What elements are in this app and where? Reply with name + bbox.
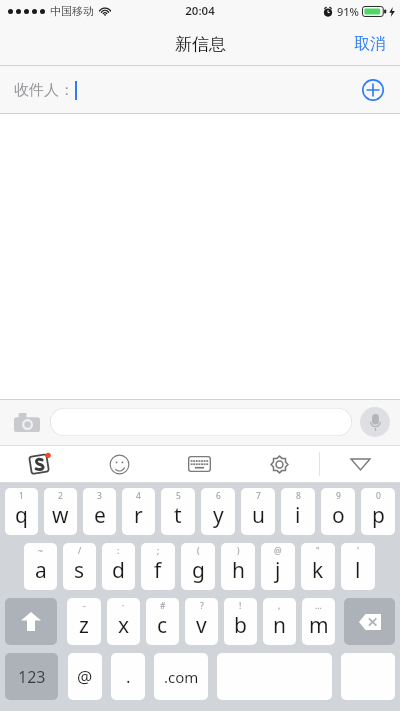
button[interactable]: ; [141, 543, 175, 590]
staticText: · [122, 600, 125, 612]
button[interactable]: @ [68, 653, 102, 700]
staticText: 6 [216, 490, 221, 502]
staticText: l [355, 556, 361, 585]
staticText: 5 [176, 490, 181, 502]
staticText: g [192, 556, 205, 585]
button[interactable]: : [102, 543, 135, 590]
button[interactable]: 9 [321, 488, 355, 535]
staticText: w [52, 501, 69, 530]
button[interactable]: 3 [83, 488, 116, 535]
staticText: 收件人： [14, 81, 74, 100]
staticText: 8 [296, 490, 301, 502]
staticText: q [15, 501, 28, 530]
staticText: 取消 [354, 34, 386, 54]
staticText: 123 [18, 666, 46, 688]
staticText: , [278, 600, 281, 612]
staticText: .com [164, 667, 199, 687]
button[interactable]: ) [221, 543, 255, 590]
button[interactable] [50, 408, 352, 436]
staticText: ! [239, 600, 242, 612]
staticText: i [295, 501, 301, 530]
button[interactable]: " [301, 543, 335, 590]
button[interactable]: Hide keyboard [320, 445, 400, 483]
button[interactable]: Settings [239, 445, 319, 483]
staticText: o [332, 501, 345, 530]
staticText: 2 [58, 490, 63, 502]
button[interactable]: Keyboard layout [159, 445, 239, 483]
button[interactable]: Numbers [5, 653, 58, 700]
staticText: 1 [19, 490, 24, 502]
staticText: " [316, 545, 320, 557]
button[interactable]: 0 [361, 488, 395, 535]
staticText: @ [77, 665, 93, 688]
button[interactable]: ( [181, 543, 215, 590]
button[interactable]: 5 [161, 488, 195, 535]
staticText: b [234, 611, 247, 640]
button[interactable]: 7 [241, 488, 275, 535]
button[interactable]: 2 [44, 488, 77, 535]
staticText: n [273, 611, 286, 640]
button[interactable]: ? [185, 598, 218, 645]
staticText: 4 [136, 490, 141, 502]
button[interactable]: 8 [281, 488, 315, 535]
staticText: / [78, 545, 82, 557]
staticText: @ [274, 545, 282, 557]
staticText: 0 [376, 490, 381, 502]
staticText: 新信息 [175, 34, 226, 55]
staticText: ) [237, 545, 240, 557]
staticText: t [174, 501, 182, 530]
button[interactable]: , [263, 598, 296, 645]
staticText: 91% [337, 4, 359, 19]
staticText: 中国移动 [50, 4, 94, 18]
button[interactable]: 取消 [340, 24, 400, 64]
button[interactable]: # [146, 598, 179, 645]
staticText: a [35, 556, 47, 585]
staticText: e [94, 501, 106, 530]
button[interactable]: 6 [201, 488, 235, 535]
button[interactable]: Emoji [79, 445, 159, 483]
button[interactable]: · [107, 598, 140, 645]
staticText: ? [200, 600, 204, 612]
staticText: v [196, 611, 207, 640]
staticText: ~ [38, 545, 43, 557]
button[interactable]: Add recipient [356, 73, 390, 107]
button[interactable]: Backspace [344, 598, 395, 645]
button[interactable]: .com [154, 653, 208, 700]
staticText: m [309, 611, 329, 640]
staticText: u [252, 501, 265, 530]
staticText: c [157, 611, 168, 640]
button[interactable]: / [63, 543, 96, 590]
staticText: 3 [97, 490, 102, 502]
staticText: f [154, 556, 162, 585]
staticText: ( [197, 545, 200, 557]
button[interactable]: ~ [24, 543, 57, 590]
staticText: z [79, 611, 89, 640]
staticText: h [232, 556, 245, 585]
button[interactable]: 1 [5, 488, 38, 535]
button[interactable]: ... [302, 598, 335, 645]
button[interactable]: Shift [5, 598, 57, 645]
staticText: ; [157, 545, 160, 557]
staticText: 7 [256, 490, 261, 502]
button[interactable]: ' [341, 543, 375, 590]
staticText: ' [357, 545, 359, 557]
button[interactable]: @ [261, 543, 295, 590]
button[interactable]: Sogou input method [0, 445, 79, 483]
staticText: j [275, 556, 281, 585]
button[interactable]: 4 [122, 488, 155, 535]
button[interactable] [341, 653, 395, 700]
button[interactable]: . [111, 653, 145, 700]
staticText: . [126, 665, 131, 688]
staticText: p [372, 501, 385, 530]
button[interactable]: - [67, 598, 101, 645]
staticText: - [83, 600, 86, 612]
button[interactable]: Camera [10, 405, 44, 439]
button[interactable]: ! [224, 598, 257, 645]
button[interactable]: Voice input [360, 407, 390, 437]
staticText: : [117, 545, 120, 557]
staticText: 20:04 [185, 3, 215, 19]
staticText: d [112, 556, 125, 585]
staticText: 9 [336, 490, 341, 502]
staticText: ... [315, 600, 322, 612]
